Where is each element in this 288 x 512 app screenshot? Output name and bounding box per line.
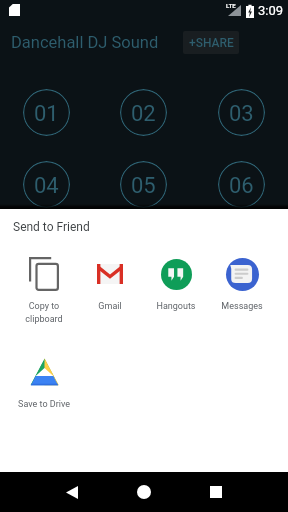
button[interactable]: Hangouts bbox=[143, 257, 209, 312]
staticText: Send to Friend bbox=[13, 220, 90, 234]
staticText: Dancehall DJ Sound bbox=[11, 33, 159, 52]
staticText: 02 bbox=[131, 101, 156, 127]
button[interactable]: 01 bbox=[23, 89, 70, 136]
staticText: 04 bbox=[34, 173, 59, 199]
staticText: Messages bbox=[221, 301, 263, 312]
staticText: 01 bbox=[34, 101, 59, 127]
staticText: Gmail bbox=[98, 301, 122, 312]
staticText: LTE bbox=[226, 2, 236, 9]
button[interactable]: Gmail bbox=[77, 257, 143, 312]
staticText: 3:09 bbox=[258, 3, 284, 18]
staticText: 03 bbox=[229, 101, 254, 127]
staticText: Hangouts bbox=[156, 301, 196, 312]
staticText: 06 bbox=[229, 173, 254, 199]
button[interactable]: 06 bbox=[218, 161, 265, 208]
button[interactable]: Back bbox=[52, 472, 92, 512]
button[interactable]: +SHARE bbox=[183, 31, 239, 54]
button[interactable]: Home bbox=[124, 472, 164, 512]
staticText: 05 bbox=[131, 173, 156, 199]
button[interactable]: 04 bbox=[23, 161, 70, 208]
button[interactable]: 05 bbox=[120, 161, 167, 208]
button[interactable]: Recent apps bbox=[196, 472, 236, 512]
button[interactable]: Save to Drive bbox=[11, 355, 77, 410]
staticText: Save to Drive bbox=[18, 399, 70, 410]
button[interactable]: Copy to clipboard bbox=[11, 257, 77, 324]
staticText: +SHARE bbox=[189, 36, 234, 50]
staticText: Copy to clipboard bbox=[25, 301, 63, 324]
button[interactable]: Messages bbox=[209, 257, 275, 312]
button[interactable]: 03 bbox=[218, 89, 265, 136]
button[interactable]: 02 bbox=[120, 89, 167, 136]
